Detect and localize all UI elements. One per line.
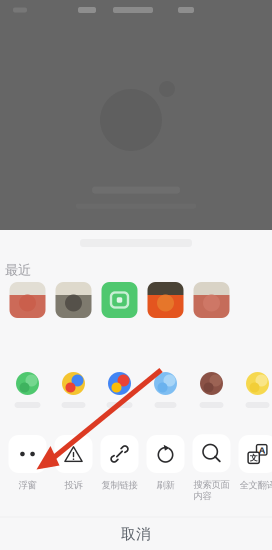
button[interactable]: A bbox=[235, 435, 272, 501]
button[interactable]: 浮窗 bbox=[5, 435, 49, 501]
staticText: 浮窗 bbox=[18, 479, 36, 491]
button[interactable]: 投诉 bbox=[51, 435, 95, 501]
button[interactable]: 分享到应用 bbox=[51, 372, 95, 414]
button[interactable]: 最近分享 bbox=[147, 282, 183, 318]
button[interactable]: 最近分享 bbox=[9, 282, 45, 318]
button[interactable]: 搜索页面内容 bbox=[189, 435, 233, 501]
button[interactable]: 分享到应用 bbox=[5, 372, 49, 414]
staticText: 文 bbox=[250, 453, 258, 463]
staticText: 取消 bbox=[121, 525, 151, 543]
staticText: 投诉 bbox=[64, 479, 82, 491]
button[interactable]: 复制链接 bbox=[97, 435, 141, 501]
button[interactable]: 分享到应用 bbox=[189, 372, 233, 414]
button[interactable]: 取消 bbox=[0, 517, 272, 550]
button[interactable]: 微信 bbox=[101, 282, 137, 318]
button[interactable]: 分享到应用 bbox=[97, 372, 141, 414]
staticText: 最近 bbox=[5, 262, 31, 278]
staticText: 搜索页面内容 bbox=[193, 479, 229, 502]
button[interactable]: 分享到应用 bbox=[235, 372, 272, 414]
staticText: 复制链接 bbox=[101, 479, 137, 491]
button[interactable]: 最近分享 bbox=[55, 282, 91, 318]
staticText: 全文翻译 bbox=[239, 479, 272, 491]
staticText: A bbox=[259, 444, 265, 456]
staticText: 刷新 bbox=[156, 479, 174, 491]
button[interactable]: 分享到应用 bbox=[143, 372, 187, 414]
button[interactable]: 刷新 bbox=[143, 435, 187, 501]
button[interactable]: 最近分享 bbox=[193, 282, 229, 318]
